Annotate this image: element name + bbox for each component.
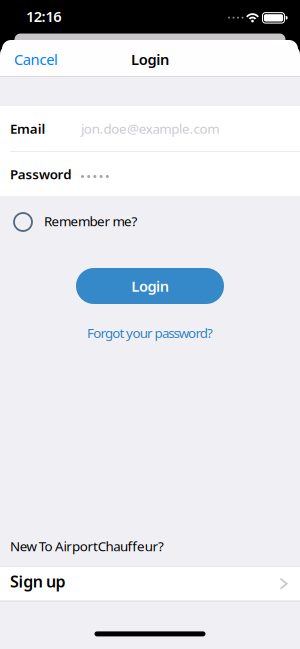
staticText: Cancel <box>14 50 58 69</box>
staticText: Login <box>131 50 169 69</box>
button[interactable]: Remember me? <box>0 211 300 231</box>
staticText: Login <box>131 276 169 296</box>
button[interactable]: Password <box>0 152 300 196</box>
staticText: 12:16 <box>26 6 61 26</box>
staticText: Remember me? <box>44 212 137 230</box>
staticText: Forgot your password? <box>87 324 213 342</box>
staticText: Email <box>10 120 46 137</box>
button[interactable]: Login <box>76 268 224 304</box>
button[interactable]: Cancel <box>0 51 58 70</box>
button[interactable]: Forgot your password? <box>87 324 213 342</box>
staticText: New To AirportChauffeur? <box>10 537 164 555</box>
staticText: Sign up <box>10 571 66 592</box>
staticText: Password <box>10 165 71 183</box>
button[interactable]: Sign up <box>0 567 300 601</box>
staticText: jon.doe@example.com <box>81 120 219 137</box>
button[interactable]: Email <box>0 106 300 151</box>
